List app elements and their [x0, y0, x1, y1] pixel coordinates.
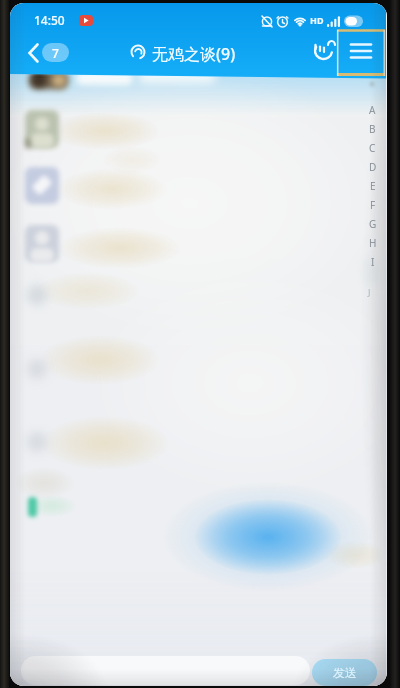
staticText: 无鸡之谈(9)	[152, 43, 236, 65]
button[interactable]: G	[366, 217, 379, 231]
staticText: G	[369, 217, 377, 231]
button[interactable]: A	[366, 103, 379, 117]
button[interactable]	[22, 165, 362, 206]
button[interactable]: H	[366, 236, 379, 250]
button[interactable]	[21, 656, 310, 685]
staticText: 14:50	[34, 12, 65, 28]
staticText: H	[369, 236, 377, 250]
staticText: 7	[52, 45, 59, 61]
button[interactable]	[310, 39, 340, 65]
staticText: A	[369, 103, 376, 117]
button[interactable]: 7	[42, 43, 69, 62]
button[interactable]: B	[366, 122, 379, 136]
button[interactable]	[337, 30, 385, 76]
button[interactable]: E	[366, 179, 379, 193]
staticText: D	[369, 160, 377, 174]
staticText: I	[371, 255, 375, 269]
staticText: E	[370, 179, 376, 193]
button[interactable]: F	[366, 198, 379, 212]
staticText: 发送	[333, 665, 357, 680]
staticText: F	[370, 198, 376, 212]
button[interactable]: D	[366, 160, 379, 174]
button[interactable]: C	[366, 141, 379, 155]
staticText: HD	[310, 14, 324, 26]
button[interactable]	[22, 108, 362, 150]
button[interactable]	[22, 223, 362, 264]
button[interactable]	[22, 39, 46, 67]
button[interactable]: 发送	[312, 659, 377, 686]
staticText: C	[369, 141, 376, 155]
button[interactable]: I	[366, 255, 379, 269]
button[interactable]: 无鸡之谈(9)	[152, 43, 236, 65]
staticText: J	[368, 286, 371, 298]
staticText: B	[369, 122, 376, 136]
